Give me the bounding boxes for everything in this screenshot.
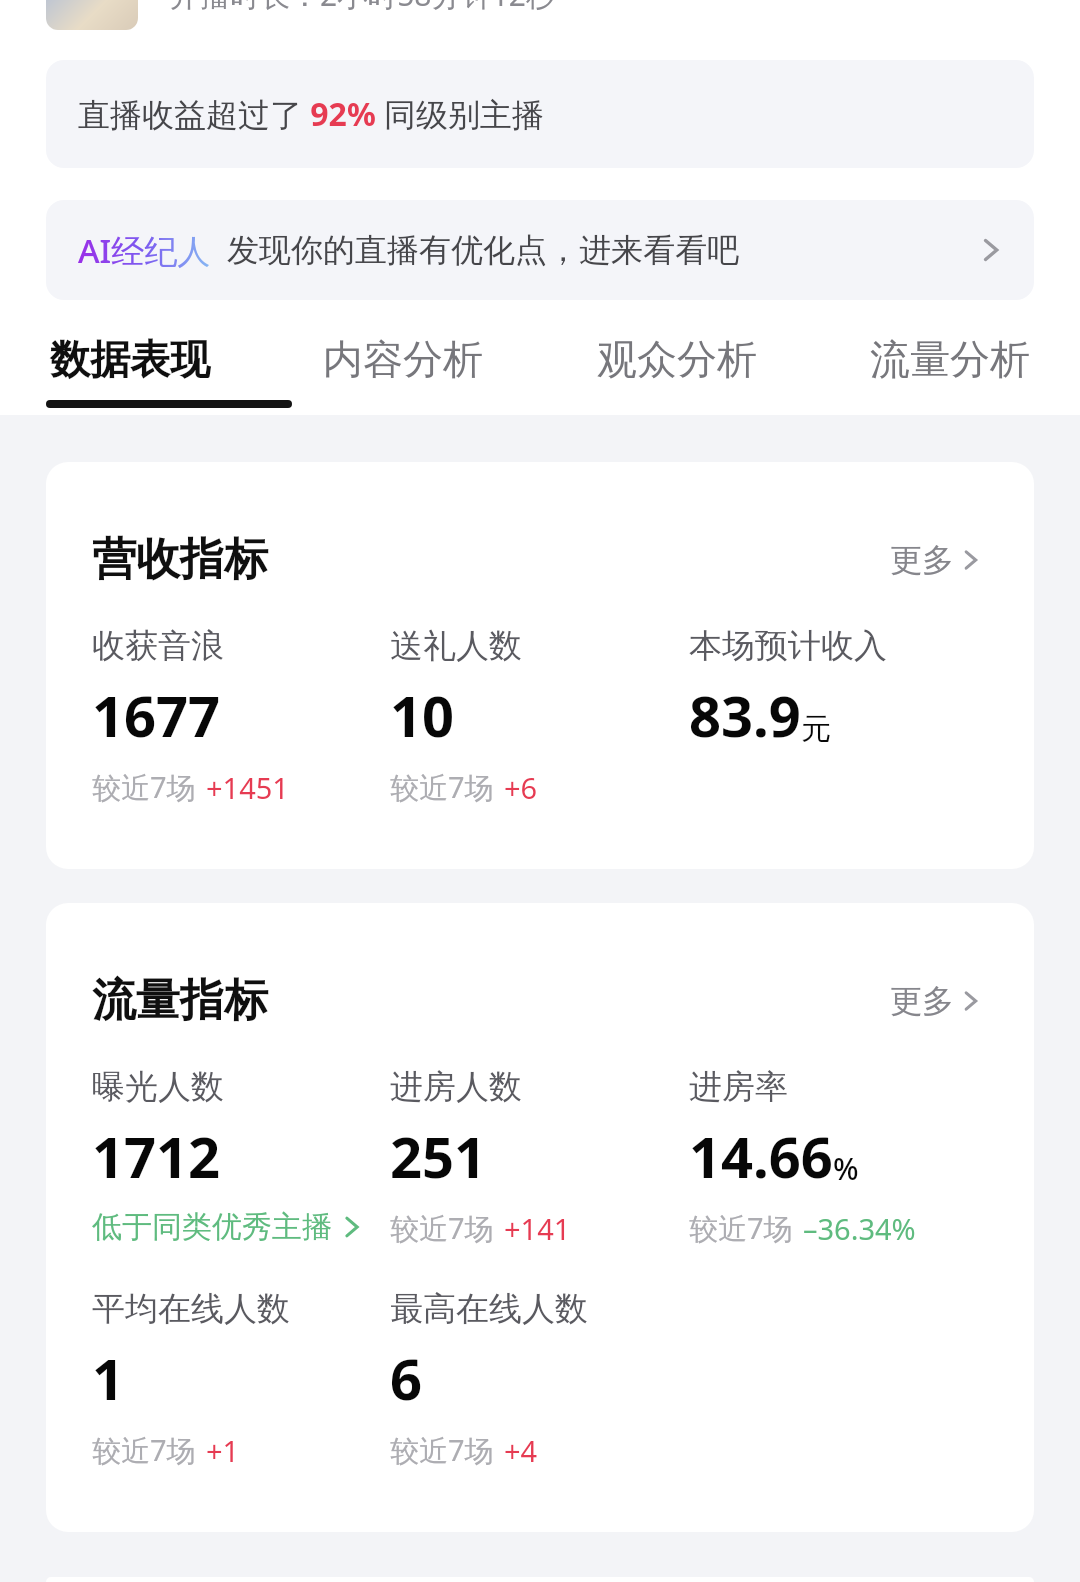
staticText: 更多 — [890, 540, 954, 580]
staticText: 送礼人数 — [390, 625, 522, 667]
staticText: 6 — [390, 1340, 423, 1416]
staticText: 营收指标 — [92, 532, 268, 587]
staticText: 最高在线人数 — [390, 1288, 588, 1330]
staticText: 10 — [390, 677, 455, 753]
staticText: 1677 — [92, 677, 221, 753]
staticText: 进房率 — [689, 1066, 788, 1108]
button[interactable]: 低于同类优秀主播 — [92, 1208, 364, 1246]
staticText: 83.9 — [689, 677, 801, 753]
staticText: 元 — [801, 710, 831, 748]
staticText: 251 — [390, 1118, 487, 1194]
button[interactable]: 直播收益超过了 92% 同级别主播 — [46, 60, 1034, 168]
other: Details — [338, 1214, 364, 1240]
staticText: 较近7场 — [689, 1208, 793, 1248]
staticText: +4 — [504, 1431, 538, 1470]
staticText: 收获音浪 — [92, 625, 224, 667]
button[interactable]: AI经纪人 — [46, 200, 1034, 300]
staticText: 1712 — [92, 1118, 221, 1194]
button[interactable]: 观众分析 — [593, 326, 761, 392]
other: More — [958, 989, 982, 1013]
staticText: 数据表现 — [50, 334, 210, 384]
staticText: 流量分析 — [870, 334, 1030, 384]
staticText: 较近7场 — [390, 1430, 494, 1470]
button[interactable]: 流量分析 — [866, 326, 1034, 392]
staticText: AI经纪人 — [78, 228, 211, 273]
staticText: % — [833, 1148, 859, 1189]
staticText: 流量指标 — [92, 973, 268, 1028]
staticText: 直播收益超过了 92% 同级别主播 — [78, 92, 545, 136]
button[interactable]: 更多 — [884, 534, 988, 586]
button[interactable]: 更多 — [884, 975, 988, 1027]
staticText: 平均在线人数 — [92, 1288, 290, 1330]
staticText: +6 — [504, 768, 538, 807]
other: More — [958, 548, 982, 572]
staticText: 发现你的直播有优化点，进来看看吧 — [227, 230, 739, 270]
staticText: 1 — [92, 1340, 125, 1416]
staticText: –36.34% — [803, 1209, 916, 1248]
staticText: 进房人数 — [390, 1066, 522, 1108]
staticText: 开播时长：2小时58分钟12秒 — [170, 0, 556, 15]
staticText: +1451 — [206, 768, 289, 807]
staticText: +141 — [504, 1209, 571, 1248]
staticText: 较近7场 — [92, 1430, 196, 1470]
staticText: 观众分析 — [597, 334, 757, 384]
staticText: 较近7场 — [390, 767, 494, 807]
staticText: +1 — [206, 1431, 240, 1470]
other: Open AI agent — [976, 236, 1004, 264]
staticText: 内容分析 — [323, 334, 483, 384]
button[interactable]: 数据表现 — [46, 326, 214, 392]
staticText: 较近7场 — [92, 767, 196, 807]
button[interactable]: 内容分析 — [319, 326, 487, 392]
staticText: 本场预计收入 — [689, 625, 887, 667]
staticText: 低于同类优秀主播 — [92, 1208, 332, 1246]
staticText: 较近7场 — [390, 1208, 494, 1248]
staticText: 更多 — [890, 981, 954, 1021]
staticText: 曝光人数 — [92, 1066, 224, 1108]
staticText: 14.66 — [689, 1118, 833, 1194]
